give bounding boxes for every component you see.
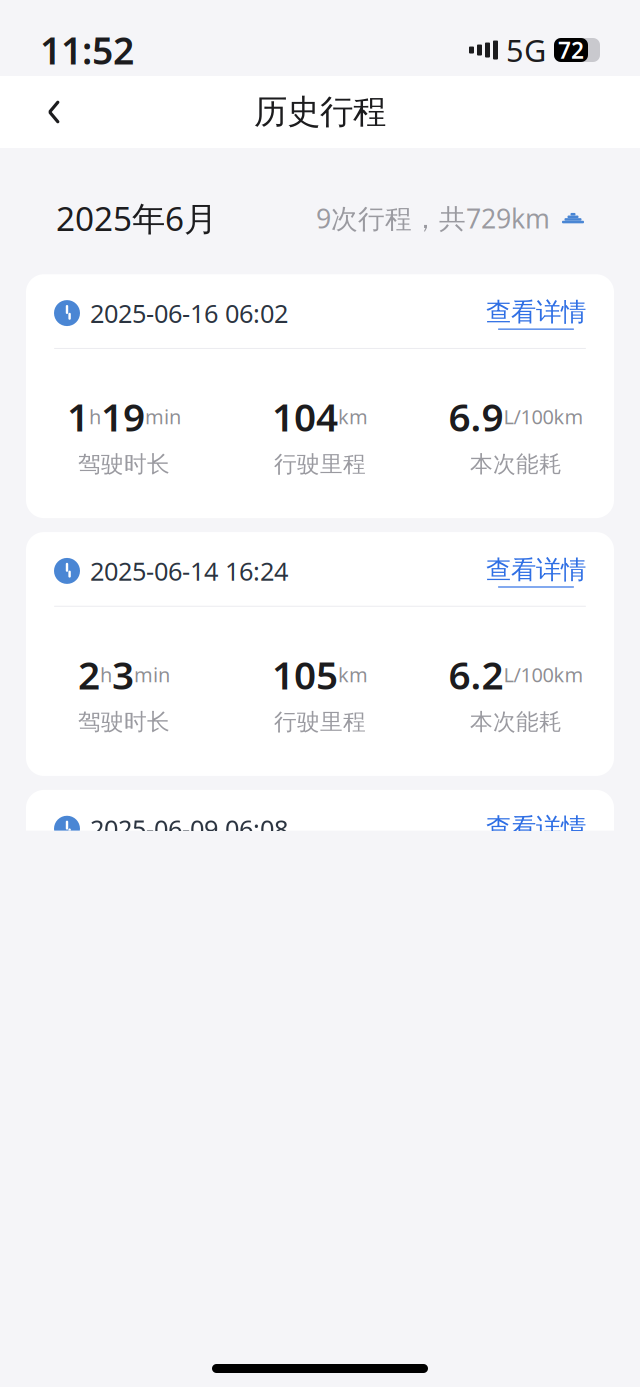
staticText: 查看详情 (486, 296, 586, 327)
staticText: 本次能耗 (470, 708, 562, 736)
staticText: 查看详情 (486, 812, 586, 843)
staticText: 6.2 (448, 649, 503, 700)
staticText: 本次能耗 (470, 450, 562, 478)
button[interactable]: 2025-06-08 17:41 (26, 1306, 614, 1387)
staticText: 2025-06-14 16:24 (90, 554, 288, 588)
staticText: km (338, 403, 368, 430)
staticText: 驾驶时长 (78, 450, 170, 478)
button[interactable]: 2025-06-16 06:02 (26, 274, 614, 518)
button[interactable]: 查看详情 (486, 554, 586, 588)
staticText: min (145, 403, 181, 430)
staticText: 105 (272, 649, 338, 700)
button[interactable]: 查看详情 (486, 296, 586, 330)
button[interactable]: 返回 (26, 84, 82, 140)
staticText: 查看详情 (486, 554, 586, 585)
staticText: L/100km (503, 661, 583, 688)
staticText: km (338, 661, 368, 688)
staticText: 3 (112, 649, 134, 700)
staticText: 2025-06-09 06:08 (90, 812, 288, 845)
button[interactable]: 2025-06-14 16:24 (26, 532, 614, 776)
staticText: 9次行程，共729km (316, 200, 550, 236)
staticText: h (100, 661, 112, 688)
staticText: 11:52 (40, 25, 134, 75)
staticText: 2025-06-16 06:02 (90, 296, 288, 330)
staticText: 104 (272, 391, 338, 442)
staticText: 行驶里程 (274, 708, 366, 736)
staticText: 1 (67, 391, 89, 442)
staticText: min (134, 661, 170, 688)
button[interactable]: 2025年6月 (0, 148, 640, 274)
staticText: 5G (506, 30, 546, 70)
button[interactable]: 2025-06-09 06:08 (26, 790, 614, 1034)
staticText: 驾驶时长 (78, 708, 170, 736)
button[interactable]: 查看详情 (486, 812, 586, 845)
staticText: L/100km (503, 403, 583, 430)
staticText: 2025年6月 (56, 196, 217, 240)
staticText: 72 (558, 35, 584, 65)
staticText: 2 (78, 649, 100, 700)
staticText: 行驶里程 (274, 450, 366, 478)
staticText: 历史行程 (254, 91, 386, 132)
staticText: h (89, 403, 101, 430)
staticText: 19 (101, 391, 145, 442)
staticText: 6.9 (448, 391, 503, 442)
